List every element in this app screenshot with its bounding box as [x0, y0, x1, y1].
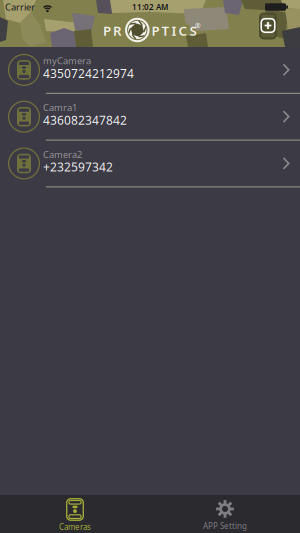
- staticText: Camra1: [43, 101, 77, 114]
- button[interactable]: Camera2: [0, 141, 300, 187]
- staticText: I: [171, 22, 176, 39]
- staticText: P: [151, 22, 159, 39]
- staticText: S: [189, 22, 196, 39]
- staticText: +232597342: [43, 159, 113, 175]
- staticText: T: [161, 22, 169, 39]
- staticText: Carrier: [5, 1, 35, 13]
- staticText: 436082347842: [43, 112, 127, 128]
- staticText: APP Setting: [203, 521, 247, 531]
- button[interactable]: Cameras: [0, 495, 150, 533]
- staticText: 11:02 AM: [132, 2, 168, 12]
- staticText: C: [178, 22, 187, 39]
- button[interactable]: APP Setting: [150, 495, 300, 533]
- staticText: P: [103, 22, 111, 39]
- staticText: myCamera: [43, 54, 91, 67]
- staticText: Camera2: [43, 148, 82, 160]
- staticText: ®: [195, 22, 201, 30]
- staticText: Cameras: [59, 522, 91, 532]
- button[interactable]: Add Camera: [255, 10, 281, 41]
- staticText: R: [113, 22, 122, 39]
- staticText: 4350724212974: [43, 65, 134, 81]
- button[interactable]: Camra1: [0, 94, 300, 141]
- button[interactable]: myCamera: [0, 47, 300, 94]
